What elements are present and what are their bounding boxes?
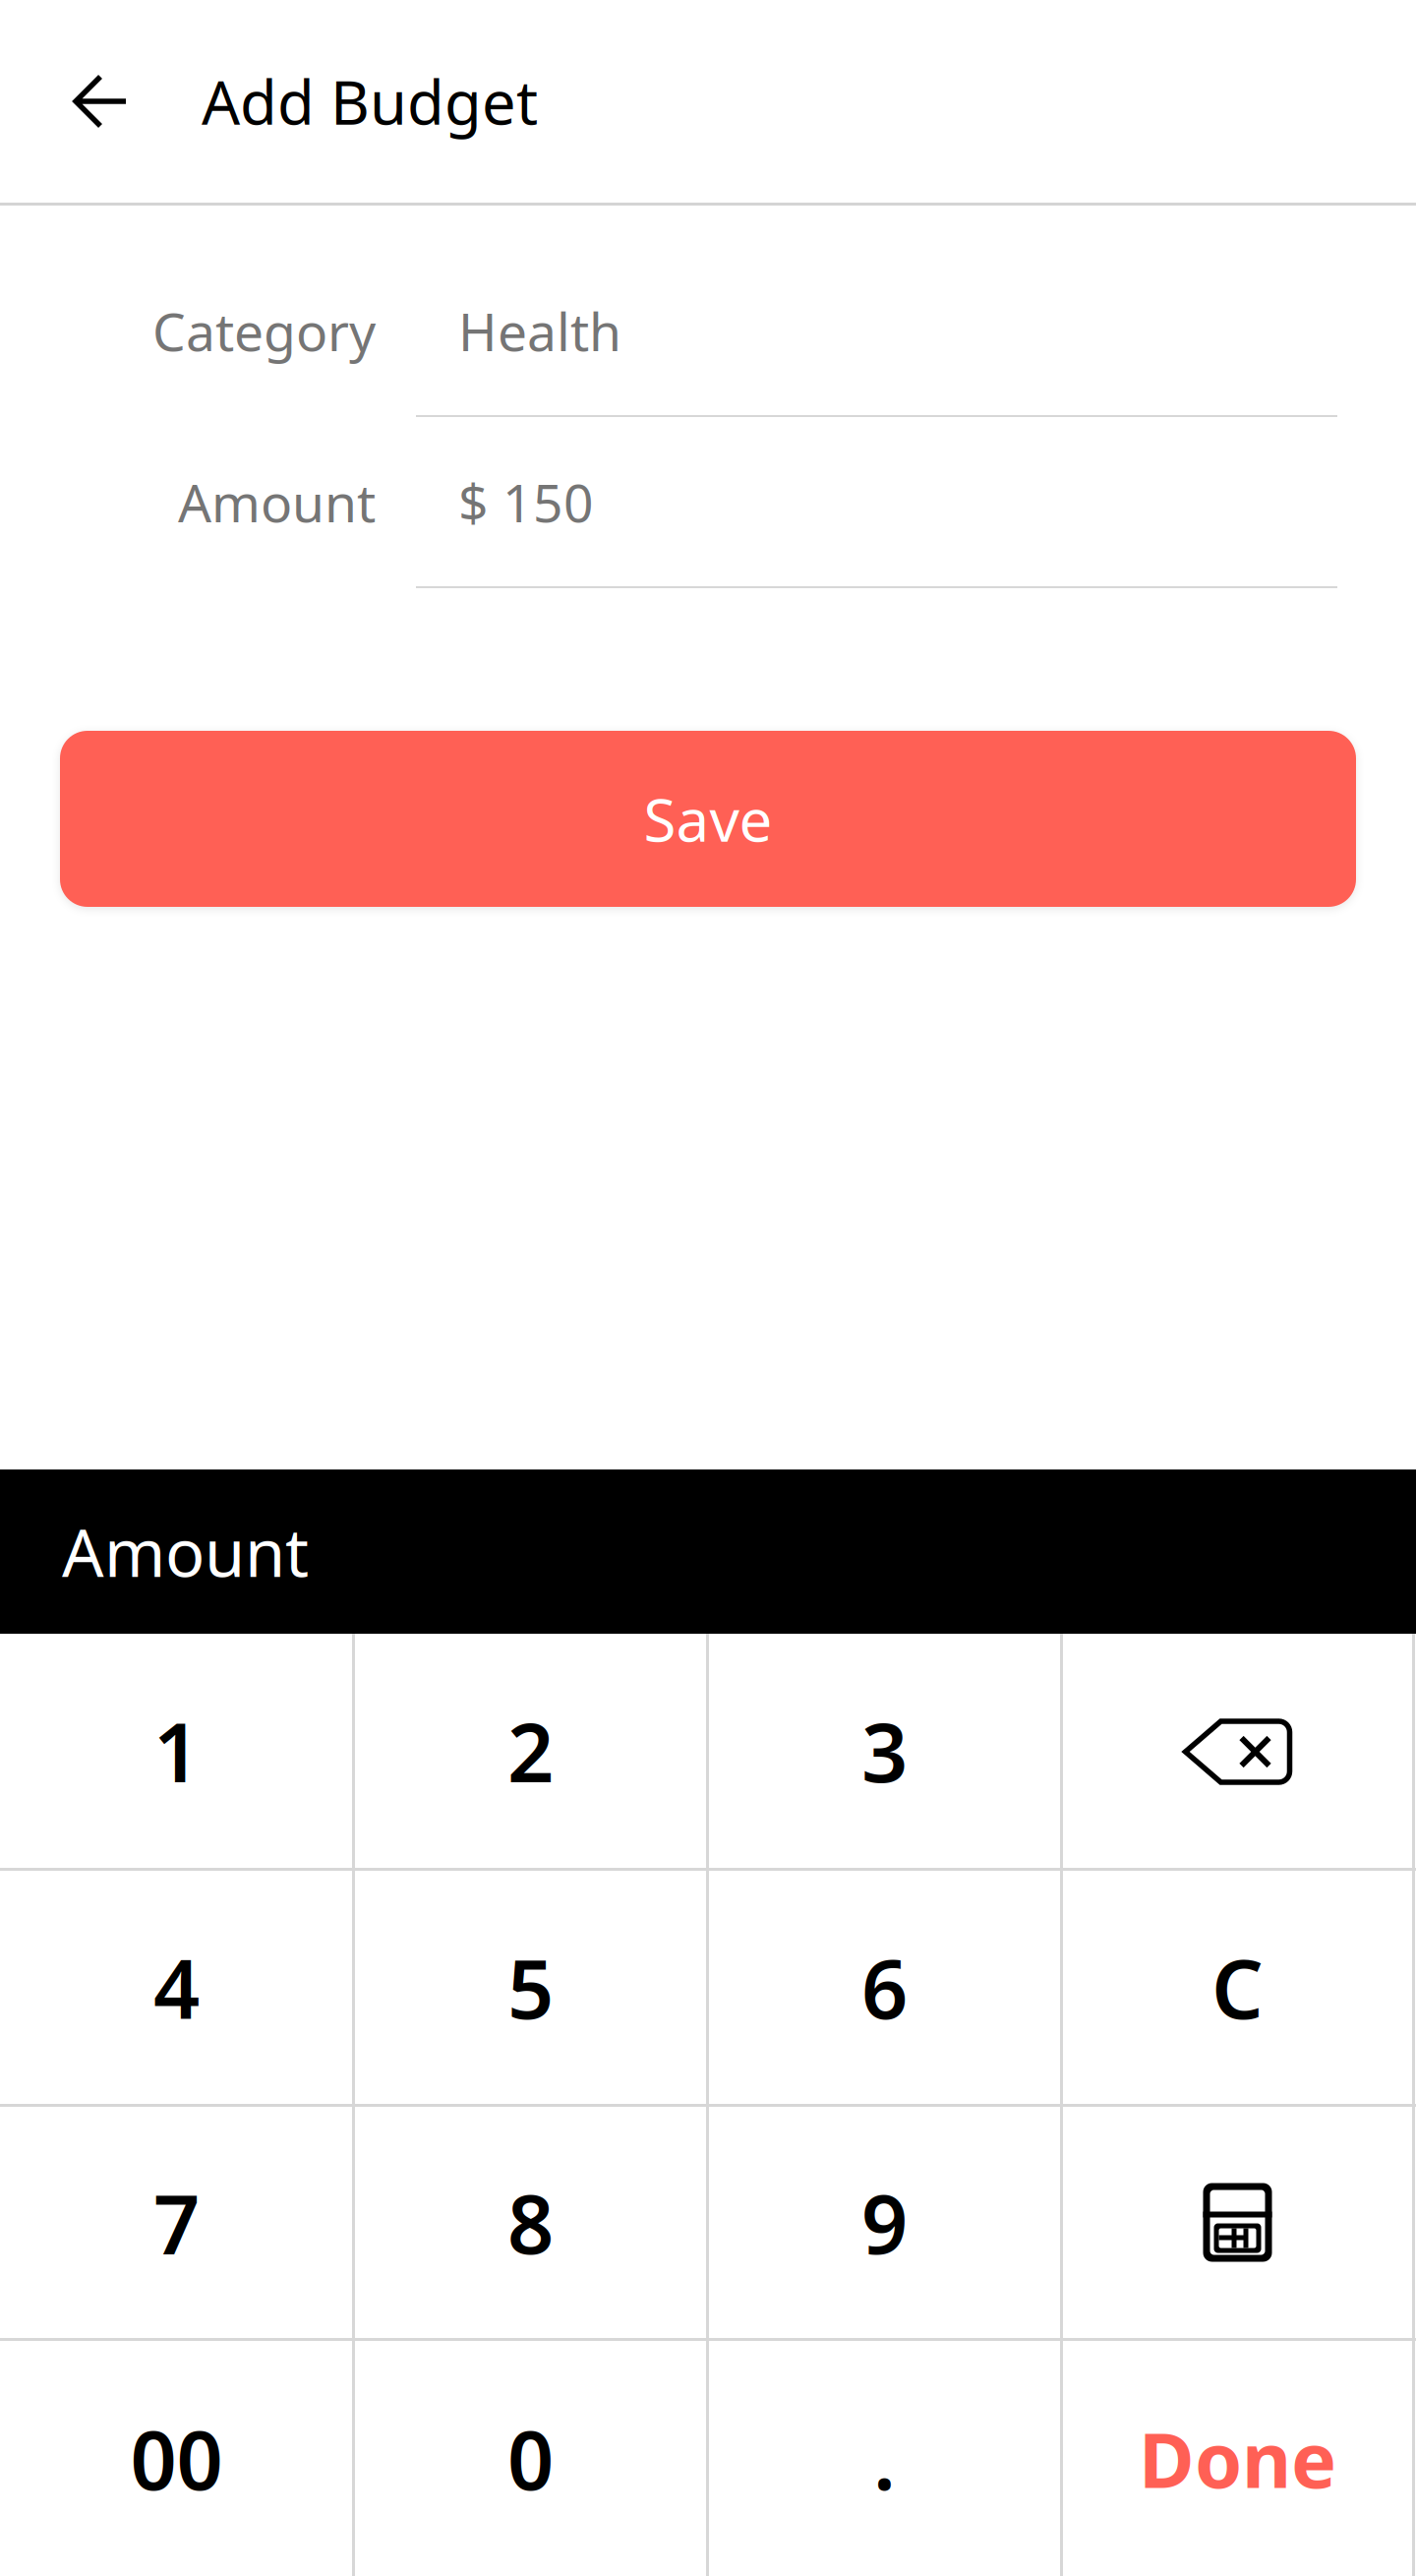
button[interactable]: 0 xyxy=(355,2341,706,2576)
button[interactable]: Delete xyxy=(1063,1634,1412,1868)
button[interactable]: 5 xyxy=(355,1871,706,2104)
button[interactable]: 00 xyxy=(1,2341,352,2576)
button[interactable]: 7 xyxy=(1,2107,352,2338)
button[interactable]: 2 xyxy=(355,1634,706,1868)
button[interactable]: . xyxy=(709,2341,1060,2576)
staticText: C xyxy=(1211,1933,1264,2041)
staticText: 5 xyxy=(507,1933,554,2041)
staticText: 2 xyxy=(507,1697,554,1805)
button[interactable]: 1 xyxy=(1,1634,352,1868)
button[interactable]: Back xyxy=(0,0,202,203)
staticText: 00 xyxy=(130,2404,223,2512)
button[interactable]: C xyxy=(1063,1871,1412,2104)
button[interactable]: Save xyxy=(60,731,1356,907)
staticText: Health xyxy=(458,296,621,366)
staticText: Done xyxy=(1139,2408,1336,2509)
button[interactable]: 3 xyxy=(709,1634,1060,1868)
staticText: 7 xyxy=(153,2168,200,2276)
staticText: 0 xyxy=(507,2404,554,2512)
staticText: 3 xyxy=(861,1697,908,1805)
button[interactable]: 4 xyxy=(1,1871,352,2104)
staticText: 6 xyxy=(861,1933,908,2041)
staticText: Add Budget xyxy=(202,61,538,141)
staticText: Amount xyxy=(178,467,376,537)
button[interactable]: 8 xyxy=(355,2107,706,2338)
staticText: Category xyxy=(152,296,376,366)
button[interactable]: Calculator xyxy=(1063,2107,1412,2338)
staticText: $ 150 xyxy=(458,467,594,537)
button[interactable]: Done xyxy=(1063,2341,1412,2576)
staticText: 8 xyxy=(507,2168,554,2276)
button[interactable]: 6 xyxy=(709,1871,1060,2104)
staticText: 9 xyxy=(861,2168,908,2276)
staticText: 4 xyxy=(153,1933,200,2041)
staticText: . xyxy=(873,2404,896,2512)
staticText: Amount xyxy=(62,1508,309,1595)
staticText: Save xyxy=(644,780,772,858)
button[interactable]: 9 xyxy=(709,2107,1060,2338)
staticText: 1 xyxy=(153,1697,200,1805)
